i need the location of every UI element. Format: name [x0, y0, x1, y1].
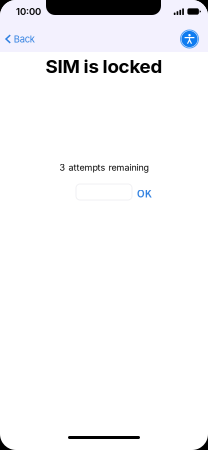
button[interactable]: OK — [133, 184, 156, 204]
button[interactable]: Accessibility — [178, 27, 201, 50]
staticText: 3 attempts remaining — [59, 162, 148, 173]
staticText: SIM is locked — [45, 55, 162, 78]
staticText: OK — [137, 188, 152, 200]
staticText: 10:00 — [16, 6, 41, 17]
button[interactable]: Back — [0, 28, 35, 50]
staticText: Back — [14, 33, 35, 45]
